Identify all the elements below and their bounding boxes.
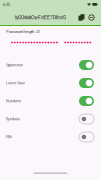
staticText: Password length: 21 [6, 29, 40, 34]
staticText: Uppercase [6, 63, 23, 67]
staticText: 6:35 [3, 2, 10, 7]
button[interactable]: Password length slider [0, 37, 101, 48]
button[interactable]: PIN [0, 128, 101, 146]
button[interactable]: Copy password [78, 14, 85, 21]
button[interactable]: Uppercase [0, 56, 101, 74]
staticText: Numbers [6, 99, 21, 103]
staticText: lyGOsIvkCwFdEE7DlhdG [15, 15, 66, 20]
button[interactable]: Numbers [0, 92, 101, 110]
button[interactable]: Symbols [0, 110, 101, 128]
staticText: PIN [6, 135, 12, 139]
staticText: Symbols [6, 117, 20, 121]
button[interactable]: Lower Case [0, 74, 101, 92]
button[interactable]: Generate new password [88, 14, 95, 21]
staticText: Lower Case [6, 81, 25, 85]
